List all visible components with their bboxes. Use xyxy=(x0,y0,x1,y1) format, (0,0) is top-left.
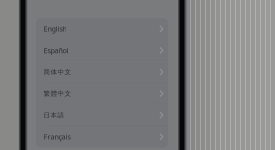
staticText: 繁體中文 xyxy=(43,89,71,98)
button[interactable]: Français xyxy=(36,126,168,148)
staticText: 简体中文 xyxy=(43,68,71,76)
button[interactable]: Español xyxy=(36,40,168,61)
staticText: 日本語 xyxy=(43,111,64,119)
button[interactable]: English xyxy=(36,18,168,40)
button[interactable]: 日本語 xyxy=(36,104,168,126)
button[interactable]: 简体中文 xyxy=(36,61,168,83)
staticText: Français xyxy=(43,132,70,142)
staticText: Español xyxy=(43,45,68,55)
button[interactable]: 繁體中文 xyxy=(36,83,168,104)
staticText: English xyxy=(43,24,66,34)
